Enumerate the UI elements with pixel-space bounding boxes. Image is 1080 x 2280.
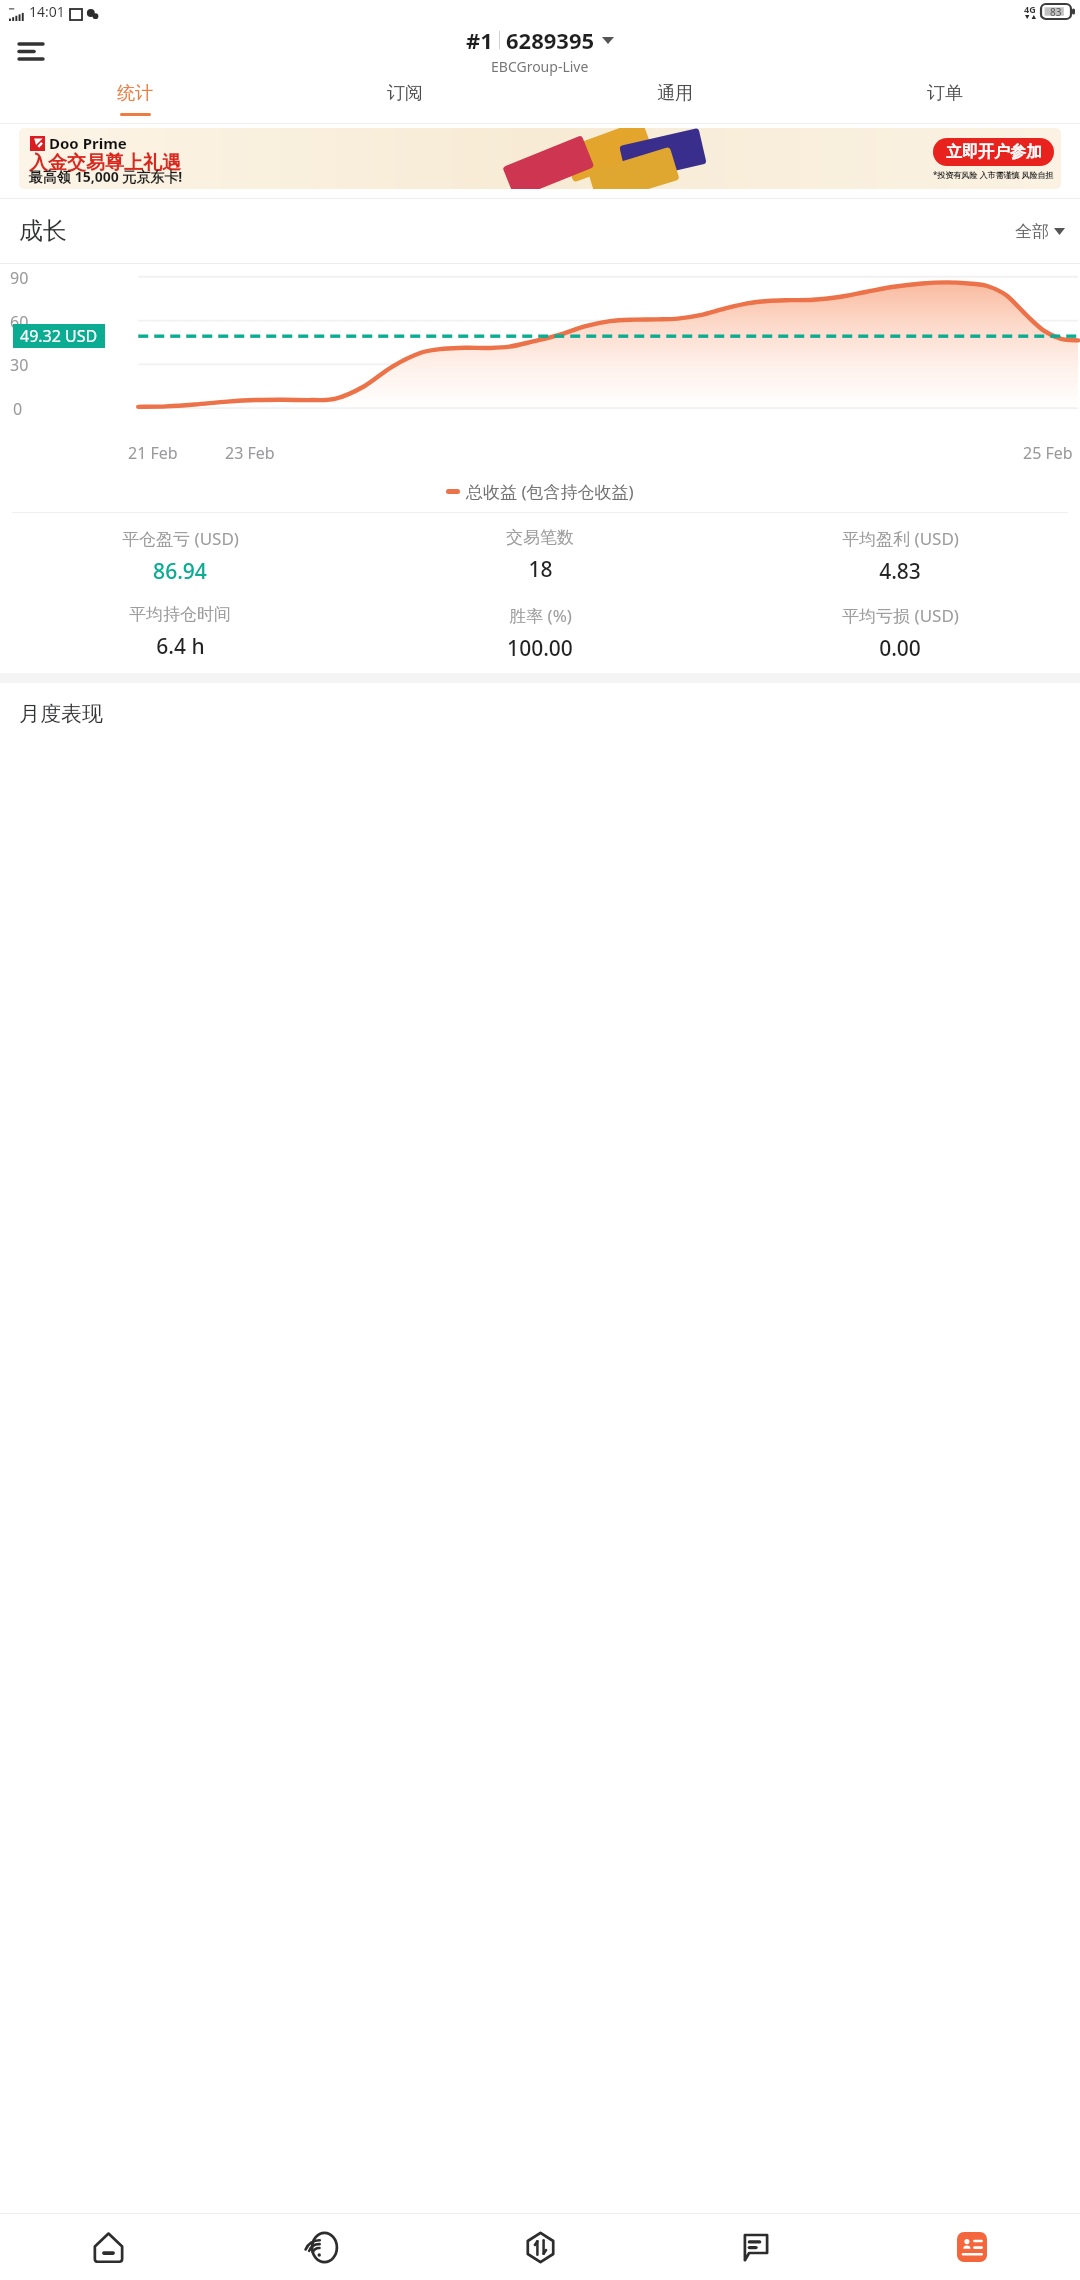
staticText: 交易笔数 <box>506 527 574 548</box>
staticText: 平均盈利 (USD) <box>842 527 959 550</box>
button[interactable]: Accounts <box>864 2214 1080 2280</box>
staticText: 0 <box>13 398 23 420</box>
staticText: 4.83 <box>879 557 921 586</box>
staticText: EBCGroup-Live <box>491 57 589 76</box>
staticText: 订单 <box>927 82 963 105</box>
button[interactable]: #1 <box>466 25 614 76</box>
staticText: 订阅 <box>387 82 423 105</box>
button[interactable]: Home <box>0 2214 216 2280</box>
button[interactable]: 立即开户参加 <box>933 138 1054 166</box>
staticText: 83 <box>1050 5 1062 19</box>
staticText: 23 Feb <box>225 442 275 464</box>
staticText: 胜率 (%) <box>509 604 572 627</box>
staticText: 统计 <box>117 82 153 105</box>
staticText: 100.00 <box>507 634 573 663</box>
staticText: 入金交易尊上礼遇 <box>29 151 181 175</box>
staticText: 18 <box>528 555 553 584</box>
staticText: 平均亏损 (USD) <box>842 604 959 627</box>
button[interactable]: Trade <box>432 2214 648 2280</box>
staticText: 25 Feb <box>1023 442 1073 464</box>
staticText: 6.4 h <box>156 632 205 661</box>
button[interactable]: Signals <box>216 2214 432 2280</box>
button[interactable]: Messages <box>648 2214 864 2280</box>
staticText: 平均持仓时间 <box>129 604 231 625</box>
staticText: 86.94 <box>153 557 207 586</box>
staticText: 0.00 <box>879 634 921 663</box>
staticText: 平仓盈亏 (USD) <box>122 527 239 550</box>
staticText: *投资有风险 入市需谨慎 风险自担 <box>933 169 1054 180</box>
staticText: 立即开户参加 <box>946 142 1042 162</box>
staticText: 21 Feb <box>128 442 178 464</box>
staticText: 总收益 (包含持仓收益) <box>466 480 634 503</box>
staticText: Doo Prime <box>49 133 127 153</box>
staticText: 90 <box>10 267 29 289</box>
staticText: 全部 <box>1015 221 1049 242</box>
button[interactable]: 订阅 <box>270 79 540 123</box>
staticText: 6289395 <box>506 25 595 55</box>
staticText: 成长 <box>19 216 67 246</box>
button[interactable]: 通用 <box>540 79 810 123</box>
button[interactable]: 全部 <box>1015 221 1065 242</box>
staticText: 14:01 <box>29 2 65 21</box>
button[interactable]: 统计 <box>0 79 270 123</box>
staticText: 月度表现 <box>19 701 103 727</box>
staticText: #1 <box>466 25 493 55</box>
staticText: 30 <box>10 354 29 376</box>
button[interactable]: Doo Prime <box>19 128 1061 189</box>
staticText: 通用 <box>657 82 693 105</box>
button[interactable]: Menu <box>8 28 54 74</box>
staticText: 60 <box>10 311 29 333</box>
button[interactable]: 订单 <box>810 79 1080 123</box>
staticText: 49.32 USD <box>20 325 98 347</box>
staticText: 4G <box>1024 3 1036 15</box>
staticText: 最高领 15,000 元京东卡! <box>29 167 183 186</box>
